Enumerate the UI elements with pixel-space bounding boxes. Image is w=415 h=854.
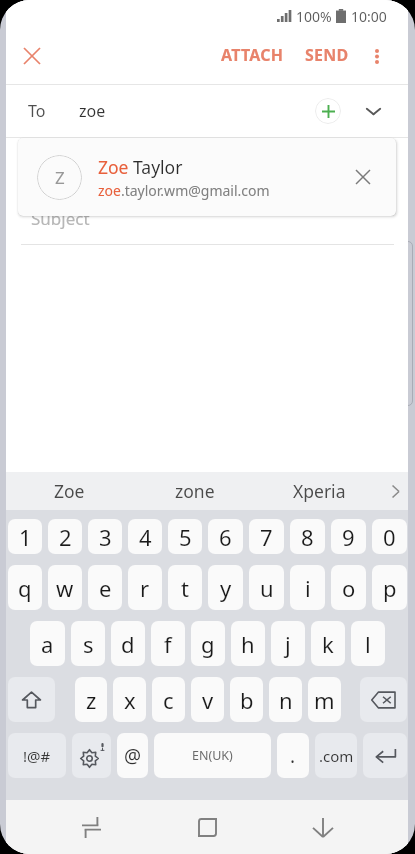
staticText: t — [181, 573, 189, 603]
button[interactable]: h — [231, 621, 265, 666]
button[interactable]: 3 — [88, 519, 122, 554]
staticText: c — [163, 685, 174, 715]
staticText: . — [290, 743, 296, 769]
staticText: To — [28, 100, 46, 122]
staticText: 4 — [139, 522, 152, 552]
staticText: Zoe — [54, 479, 85, 503]
button[interactable]: @ — [117, 733, 148, 778]
button[interactable]: .com — [315, 733, 357, 778]
button[interactable]: a — [30, 621, 65, 666]
button[interactable]: Keyboard settings — [72, 733, 111, 778]
button[interactable]: Remove recipient — [343, 157, 383, 197]
button[interactable]: ATTACH — [211, 34, 294, 76]
button[interactable]: More options — [360, 39, 394, 73]
button[interactable]: o — [331, 565, 366, 610]
button[interactable]: l — [351, 621, 385, 666]
staticText: y — [220, 573, 232, 603]
staticText: p — [383, 573, 397, 603]
button[interactable]: f — [151, 621, 185, 666]
button[interactable]: 5 — [168, 519, 202, 554]
staticText: o — [342, 573, 356, 603]
staticText: 8 — [301, 522, 314, 552]
staticText: b — [240, 685, 254, 715]
button[interactable]: Shift — [8, 677, 55, 722]
button[interactable]: 1 — [8, 519, 42, 554]
staticText: a — [41, 629, 54, 659]
staticText: 1 — [19, 522, 32, 552]
button[interactable]: !@# — [8, 733, 66, 778]
staticText: 6 — [219, 522, 232, 552]
button[interactable]: Close — [12, 36, 52, 76]
button[interactable]: m — [308, 677, 341, 722]
button[interactable]: 4 — [128, 519, 162, 554]
staticText: u — [260, 573, 274, 603]
staticText: .com — [319, 746, 354, 766]
staticText: EN(UK) — [192, 747, 233, 764]
button[interactable]: SEND — [294, 34, 360, 76]
button[interactable]: b — [230, 677, 263, 722]
button[interactable]: q — [8, 565, 42, 610]
button[interactable]: u — [249, 565, 284, 610]
button[interactable]: 2 — [48, 519, 82, 554]
button[interactable]: . — [277, 733, 309, 778]
staticText: SEND — [305, 44, 349, 66]
button[interactable]: x — [113, 677, 146, 722]
staticText: zone — [175, 479, 215, 503]
staticText: f — [164, 629, 172, 659]
staticText: 10:00 — [351, 7, 387, 26]
button[interactable]: p — [372, 565, 407, 610]
button[interactable]: j — [271, 621, 305, 666]
staticText: 3 — [99, 522, 112, 552]
button[interactable]: Z — [18, 138, 396, 216]
button[interactable]: 8 — [290, 519, 325, 554]
staticText: 7 — [260, 522, 273, 552]
button[interactable]: r — [128, 565, 162, 610]
button[interactable]: Home — [180, 800, 234, 854]
staticText: j — [285, 629, 291, 659]
button[interactable]: d — [111, 621, 145, 666]
button[interactable]: Back — [296, 800, 350, 854]
staticText: m — [314, 685, 335, 715]
button[interactable]: k — [311, 621, 345, 666]
button[interactable]: 0 — [372, 519, 407, 554]
staticText: q — [18, 573, 32, 603]
staticText: n — [279, 685, 293, 715]
button[interactable]: i — [290, 565, 325, 610]
staticText: Z — [55, 166, 65, 189]
button[interactable]: Recent apps — [64, 800, 118, 854]
staticText: v — [202, 685, 214, 715]
staticText: s — [83, 629, 94, 659]
button[interactable]: EN(UK) — [154, 733, 271, 778]
staticText: i — [305, 573, 311, 603]
button[interactable]: More suggestions — [382, 472, 408, 510]
button[interactable]: Add recipient — [315, 98, 341, 124]
staticText: z — [86, 685, 97, 715]
button[interactable]: c — [152, 677, 185, 722]
button[interactable]: 7 — [249, 519, 284, 554]
staticText: e — [99, 573, 112, 603]
button[interactable]: zone — [132, 472, 257, 510]
button[interactable]: Expand recipients — [357, 95, 389, 127]
staticText: x — [124, 685, 136, 715]
button[interactable]: v — [191, 677, 224, 722]
button[interactable]: w — [48, 565, 82, 610]
button[interactable]: Backspace — [360, 677, 407, 722]
staticText: k — [322, 629, 334, 659]
button[interactable]: n — [269, 677, 302, 722]
button[interactable]: 6 — [208, 519, 243, 554]
button[interactable]: Zoe — [6, 472, 132, 510]
staticText: h — [241, 629, 255, 659]
button[interactable]: z — [75, 677, 107, 722]
button[interactable]: g — [191, 621, 225, 666]
button[interactable]: Xperia — [257, 472, 382, 510]
button[interactable]: e — [88, 565, 122, 610]
staticText: 100% — [296, 7, 332, 26]
staticText: l — [365, 629, 371, 659]
staticText: 0 — [383, 522, 396, 552]
staticText: r — [140, 573, 150, 603]
button[interactable]: Enter — [363, 733, 407, 778]
button[interactable]: 9 — [331, 519, 366, 554]
button[interactable]: y — [208, 565, 243, 610]
button[interactable]: t — [168, 565, 202, 610]
button[interactable]: s — [71, 621, 105, 666]
